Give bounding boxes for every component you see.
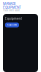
- staticText: Track every asset: [3, 9, 20, 12]
- button[interactable]: Add Item: [5, 22, 19, 27]
- staticText: EQUIPMENT: [3, 6, 21, 9]
- staticText: MANAGE: [3, 2, 16, 6]
- staticText: Equipment: [5, 17, 22, 20]
- staticText: Add Item: [7, 23, 17, 26]
